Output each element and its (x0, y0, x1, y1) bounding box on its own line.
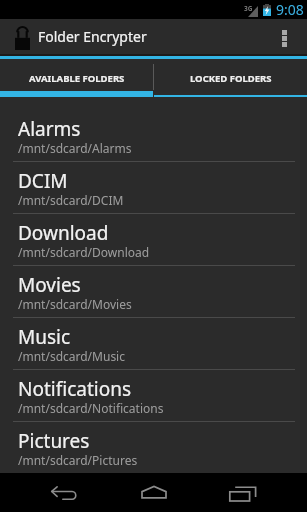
staticText: Folder Encrypter (38, 27, 147, 46)
button[interactable]: Download (0, 214, 307, 265)
button[interactable]: More options (267, 19, 307, 54)
button[interactable]: AVAILABLE FOLDERS (0, 59, 153, 97)
staticText: Music (18, 324, 71, 350)
button[interactable]: Movies (0, 266, 307, 317)
button[interactable]: Back (41, 473, 87, 512)
staticText: 9:08 (276, 0, 304, 19)
staticText: Pictures (18, 428, 90, 454)
staticText: LOCKED FOLDERS (190, 72, 272, 85)
button[interactable]: Alarms (0, 110, 307, 161)
button[interactable]: Notifications (0, 370, 307, 421)
staticText: Alarms (18, 116, 81, 142)
staticText: DCIM (18, 168, 68, 194)
staticText: AVAILABLE FOLDERS (29, 72, 125, 85)
button[interactable]: Pictures (0, 422, 307, 473)
staticText: Download (18, 220, 109, 246)
staticText: /mnt/sdcard/Notifications (18, 400, 164, 416)
staticText: /mnt/sdcard/Alarms (18, 140, 132, 156)
button[interactable]: LOCKED FOLDERS (154, 59, 307, 97)
button[interactable]: App icon (0, 19, 38, 54)
staticText: Movies (18, 272, 81, 298)
button[interactable]: Recent apps (220, 473, 266, 512)
button[interactable]: Home (131, 473, 177, 512)
staticText: /mnt/sdcard/Music (18, 348, 125, 364)
button[interactable]: DCIM (0, 162, 307, 213)
staticText: /mnt/sdcard/Pictures (18, 452, 138, 468)
staticText: /mnt/sdcard/DCIM (18, 192, 124, 208)
button[interactable]: Music (0, 318, 307, 369)
staticText: /mnt/sdcard/Download (18, 244, 150, 260)
staticText: /mnt/sdcard/Movies (18, 296, 132, 312)
staticText: 3G (244, 4, 253, 13)
staticText: Notifications (18, 376, 132, 402)
